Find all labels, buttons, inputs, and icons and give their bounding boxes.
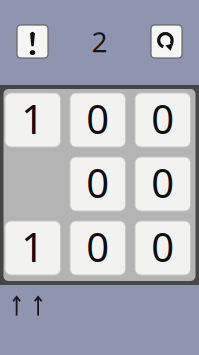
button[interactable]: Tile 0 (135, 221, 190, 275)
staticText: 2 (91, 23, 107, 60)
staticText: 1 (21, 92, 44, 145)
button[interactable]: Move column two up (34, 296, 42, 316)
staticText: 0 (86, 92, 109, 145)
staticText: 0 (151, 92, 174, 145)
staticText: 0 (151, 220, 174, 273)
button[interactable]: Tile 0 (135, 93, 190, 147)
staticText: 0 (151, 156, 174, 209)
button[interactable]: Tile 0 (70, 93, 125, 147)
button[interactable]: Tile 0 (70, 157, 125, 211)
staticText: 0 (86, 156, 109, 209)
button[interactable]: Restart (151, 25, 182, 58)
button[interactable]: Tile 0 (70, 221, 125, 275)
button[interactable]: Tile 1 (5, 221, 60, 275)
button[interactable]: Tile 1 (5, 93, 60, 147)
staticText: 1 (21, 220, 44, 273)
staticText: 0 (86, 220, 109, 273)
button[interactable]: Hint (17, 25, 48, 58)
button[interactable]: Tile 0 (135, 157, 190, 211)
button[interactable]: Move column one up (13, 296, 21, 316)
